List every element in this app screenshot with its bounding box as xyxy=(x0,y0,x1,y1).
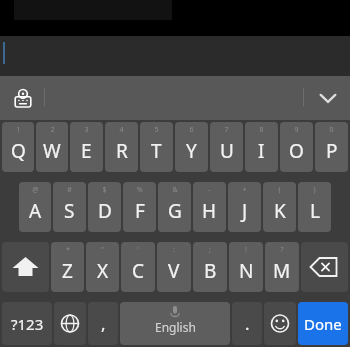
button[interactable]: Shift xyxy=(2,242,49,292)
staticText: 5 xyxy=(154,125,159,135)
button[interactable]: & xyxy=(158,182,191,232)
button[interactable]: # xyxy=(53,182,86,232)
staticText: " xyxy=(101,245,104,255)
button[interactable]: 3 xyxy=(70,122,103,172)
staticText: P xyxy=(326,138,338,164)
button[interactable]: " xyxy=(86,242,119,292)
staticText: @ xyxy=(32,185,39,195)
staticText: B xyxy=(204,258,217,284)
staticText: U xyxy=(220,138,234,164)
staticText: ( xyxy=(278,185,281,195)
button[interactable]: , xyxy=(88,302,118,345)
button[interactable]: ! xyxy=(229,242,263,292)
staticText: . xyxy=(245,312,250,335)
staticText: 7 xyxy=(224,125,229,135)
staticText: K xyxy=(274,198,286,224)
button[interactable]: Expand suggestions xyxy=(314,84,342,112)
staticText: J xyxy=(242,198,248,224)
button[interactable]: + xyxy=(228,182,261,232)
staticText: M xyxy=(273,258,291,284)
staticText: , xyxy=(101,312,106,335)
staticText: * xyxy=(66,245,70,255)
staticText: W xyxy=(43,138,61,164)
staticText: 4 xyxy=(119,125,124,135)
staticText: I xyxy=(258,138,265,164)
button[interactable]: . xyxy=(232,302,262,345)
staticText: - xyxy=(208,185,211,195)
staticText: Done xyxy=(304,314,342,334)
staticText: # xyxy=(67,185,72,195)
staticText: 9 xyxy=(294,125,299,135)
staticText: Z xyxy=(62,258,73,284)
staticText: L xyxy=(310,198,320,224)
button[interactable]: 0 xyxy=(315,122,348,172)
button[interactable]: - xyxy=(193,182,226,232)
staticText: % xyxy=(137,185,143,195)
button[interactable]: English xyxy=(120,302,230,345)
staticText: ?123 xyxy=(11,314,44,334)
staticText: C xyxy=(132,258,145,284)
button[interactable]: 1 xyxy=(2,122,34,172)
staticText: Y xyxy=(186,138,197,164)
staticText: 0 xyxy=(329,125,334,135)
staticText: ; xyxy=(209,245,211,255)
staticText: H xyxy=(202,198,217,224)
staticText: ! xyxy=(245,245,247,255)
staticText: $ xyxy=(102,185,107,195)
button[interactable]: 7 xyxy=(210,122,243,172)
staticText: F xyxy=(135,198,145,224)
staticText: O xyxy=(289,138,304,164)
button[interactable]: @ xyxy=(19,182,51,232)
button[interactable]: 2 xyxy=(36,122,68,172)
button[interactable]: ' xyxy=(121,242,155,292)
button[interactable]: * xyxy=(51,242,84,292)
staticText: + xyxy=(242,185,247,195)
staticText: E xyxy=(81,138,92,164)
staticText: ) xyxy=(313,185,316,195)
button[interactable]: : xyxy=(157,242,191,292)
staticText: ? xyxy=(280,245,284,255)
staticText: T xyxy=(151,138,162,164)
staticText: 1 xyxy=(16,125,21,135)
button[interactable]: $ xyxy=(88,182,121,232)
button[interactable]: Change language xyxy=(54,302,86,345)
staticText: A xyxy=(29,198,42,224)
staticText: 3 xyxy=(84,125,89,135)
button[interactable]: ? xyxy=(265,242,299,292)
staticText: R xyxy=(116,138,128,164)
button[interactable]: 5 xyxy=(140,122,173,172)
staticText: D xyxy=(98,198,112,224)
button[interactable]: % xyxy=(123,182,156,232)
button[interactable]: 4 xyxy=(105,122,138,172)
staticText: S xyxy=(64,198,75,224)
button[interactable]: 8 xyxy=(245,122,278,172)
staticText: V xyxy=(168,258,180,284)
button[interactable]: ) xyxy=(298,182,331,232)
staticText: & xyxy=(172,185,178,195)
staticText: G xyxy=(168,198,182,224)
staticText: English xyxy=(155,319,196,335)
button[interactable]: ?123 xyxy=(2,302,52,345)
staticText: Q xyxy=(11,138,26,164)
staticText: 2 xyxy=(50,125,55,135)
staticText: 6 xyxy=(189,125,194,135)
button[interactable]: 6 xyxy=(175,122,208,172)
button[interactable]: ( xyxy=(263,182,296,232)
button[interactable]: ; xyxy=(193,242,227,292)
staticText: X xyxy=(97,258,109,284)
staticText: ' xyxy=(137,245,139,255)
button[interactable]: Stickers xyxy=(8,83,38,113)
staticText: 8 xyxy=(259,125,264,135)
staticText: N xyxy=(239,258,254,284)
button[interactable]: 9 xyxy=(280,122,313,172)
button[interactable]: Backspace xyxy=(301,242,348,292)
button[interactable]: Emoji xyxy=(264,302,296,345)
button[interactable]: Done xyxy=(298,302,348,345)
staticText: : xyxy=(173,245,175,255)
